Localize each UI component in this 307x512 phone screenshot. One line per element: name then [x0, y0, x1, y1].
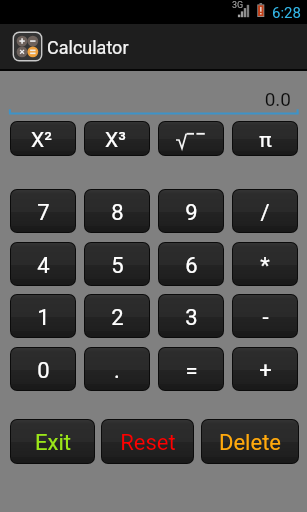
- staticText: 7: [37, 200, 50, 226]
- button[interactable]: *: [233, 243, 297, 285]
- button[interactable]: X³: [85, 122, 149, 155]
- button[interactable]: App icon: [12, 31, 43, 62]
- staticText: Delete: [219, 430, 281, 456]
- button[interactable]: Exit: [11, 420, 94, 463]
- button[interactable]: 8: [85, 190, 149, 232]
- staticText: 3G: [232, 0, 244, 11]
- staticText: 0.0: [0, 88, 291, 112]
- staticText: 0: [37, 358, 50, 384]
- staticText: -: [262, 305, 269, 331]
- staticText: 1: [37, 305, 50, 331]
- button[interactable]: 9: [159, 190, 223, 232]
- button[interactable]: .: [85, 348, 149, 390]
- staticText: Reset: [120, 430, 176, 456]
- staticText: =: [185, 358, 198, 384]
- button[interactable]: 0: [11, 348, 75, 390]
- button[interactable]: 5: [85, 243, 149, 285]
- button[interactable]: +: [233, 348, 297, 390]
- button[interactable]: [159, 122, 223, 155]
- button[interactable]: Delete: [202, 420, 298, 463]
- staticText: π: [259, 128, 272, 153]
- staticText: Exit: [35, 430, 71, 456]
- staticText: *: [260, 253, 270, 279]
- button[interactable]: 4: [11, 243, 75, 285]
- staticText: 4: [37, 253, 50, 279]
- button[interactable]: π: [233, 122, 297, 155]
- staticText: 8: [111, 200, 124, 226]
- staticText: 5: [111, 253, 124, 279]
- button[interactable]: /: [233, 190, 297, 232]
- staticText: +: [259, 358, 272, 384]
- button[interactable]: 2: [85, 295, 149, 337]
- button[interactable]: 6: [159, 243, 223, 285]
- button[interactable]: 7: [11, 190, 75, 232]
- button[interactable]: Reset: [102, 420, 193, 463]
- staticText: 3: [185, 305, 198, 331]
- button[interactable]: =: [159, 348, 223, 390]
- staticText: Calculator: [47, 37, 129, 58]
- button[interactable]: 3: [159, 295, 223, 337]
- button[interactable]: X²: [11, 122, 75, 155]
- staticText: 6: [185, 253, 198, 279]
- button[interactable]: 1: [11, 295, 75, 337]
- staticText: 2: [111, 305, 124, 331]
- staticText: X²: [31, 128, 52, 153]
- staticText: 6:28: [272, 4, 301, 22]
- staticText: X³: [105, 128, 126, 153]
- staticText: /: [260, 200, 270, 226]
- button[interactable]: -: [233, 295, 297, 337]
- staticText: .: [114, 358, 120, 384]
- staticText: 9: [185, 200, 198, 226]
